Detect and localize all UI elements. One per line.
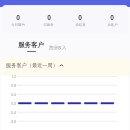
staticText: 0	[110, 13, 114, 22]
button[interactable]: 服务客户	[18, 41, 44, 52]
staticText: 今日预约	[11, 23, 25, 27]
button[interactable]: 0	[33, 13, 64, 27]
button[interactable]: 服务客户（最近一周）	[6, 62, 64, 69]
staticText: 0.4	[4, 92, 16, 97]
staticText: 0	[78, 13, 82, 22]
staticText: -0.8	[4, 119, 16, 124]
staticText: 1.2	[4, 74, 16, 79]
button[interactable]: 0	[2, 13, 33, 27]
staticText: 0	[16, 13, 20, 22]
staticText: 待结算	[75, 23, 86, 27]
staticText: 已服务	[43, 23, 54, 27]
staticText: -0.4	[4, 110, 16, 115]
staticText: 服务客户	[18, 41, 44, 49]
staticText: 0	[47, 13, 51, 22]
staticText: 服务客户（最近一周）	[6, 62, 58, 69]
button[interactable]: 营业收入	[49, 45, 67, 50]
button[interactable]: 0	[96, 13, 128, 27]
staticText: 0.0	[4, 101, 16, 106]
staticText: 0.8	[4, 83, 16, 88]
button[interactable]: 0	[64, 13, 96, 27]
staticText: 总客户	[107, 23, 118, 27]
